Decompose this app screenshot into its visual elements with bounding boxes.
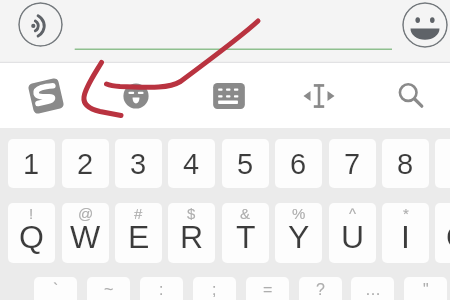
button[interactable]: 6 [275,139,322,188]
button[interactable]: SwiftKey [20,63,72,128]
button[interactable]: ! [8,203,55,263]
staticText: @ [78,205,94,222]
staticText: ; [212,281,217,299]
staticText: Y [288,219,310,255]
staticText: : [159,281,164,299]
staticText: … [365,281,381,299]
staticText: 1 [23,148,40,180]
button[interactable]: 7 [329,139,376,188]
button[interactable]: & [222,203,269,263]
staticText: W [70,219,101,255]
staticText: ~ [104,281,114,299]
button[interactable]: 3 [115,139,162,188]
staticText: ! [29,205,34,222]
staticText: R [180,219,204,255]
staticText: ^ [349,205,357,222]
staticText: & [240,205,251,222]
staticText: U [341,219,365,255]
staticText: * [403,205,409,222]
button[interactable]: 5 [222,139,269,188]
button[interactable]: # [115,203,162,263]
button[interactable]: Keyboard [203,63,255,128]
staticText: # [134,205,143,222]
button[interactable]: * [382,203,429,263]
staticText: 3 [130,148,147,180]
button[interactable]: Voice input [18,2,63,47]
button[interactable]: $ [168,203,215,263]
staticText: $ [187,205,196,222]
staticText: % [292,205,306,222]
staticText: = [263,281,273,299]
button[interactable]: 1 [8,139,55,188]
button[interactable]: 8 [382,139,429,188]
staticText: " [423,281,429,299]
button[interactable]: ? [299,277,342,300]
button[interactable]: ~ [87,277,130,300]
button[interactable]: ^ [329,203,376,263]
staticText: ` [53,281,59,299]
button[interactable]: ( [435,203,450,263]
button[interactable]: Stickers [110,63,162,128]
button[interactable]: ; [193,277,236,300]
staticText: 8 [397,148,414,180]
button[interactable]: % [275,203,322,263]
staticText: ? [316,281,325,299]
button[interactable]: Search [383,63,435,128]
staticText: Q [19,219,44,255]
staticText: 5 [237,148,254,180]
staticText: 7 [344,148,361,180]
staticText: 2 [77,148,94,180]
staticText: O [446,219,450,255]
button[interactable]: " [404,277,447,300]
button[interactable]: … [351,277,394,300]
button[interactable]: Cursor control [293,63,345,128]
staticText: T [236,219,256,255]
staticText: 6 [290,148,307,180]
staticText: E [128,219,150,255]
button[interactable]: : [140,277,183,300]
button[interactable]: 4 [168,139,215,188]
button[interactable]: Emoji [402,2,448,48]
button[interactable]: = [246,277,289,300]
button[interactable]: 2 [62,139,109,188]
button[interactable]: ` [34,277,77,300]
button[interactable]: @ [62,203,109,263]
staticText: 4 [183,148,200,180]
staticText: I [401,219,410,255]
